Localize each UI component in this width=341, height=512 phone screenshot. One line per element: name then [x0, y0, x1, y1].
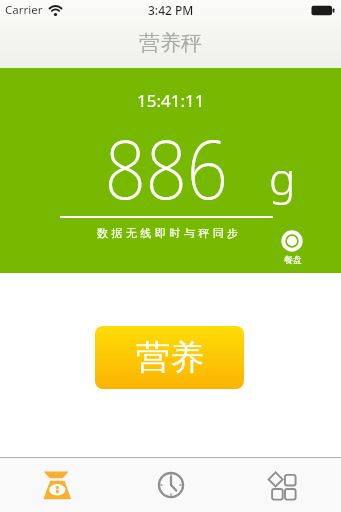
staticText: 数据无线即时与秤同步 — [95, 226, 240, 240]
button[interactable] — [114, 458, 228, 512]
button[interactable] — [0, 458, 114, 512]
button[interactable]: 营养 — [95, 326, 244, 389]
staticText: Carrier — [5, 2, 43, 18]
button[interactable]: 餐盘 — [274, 228, 312, 268]
staticText: 营养 — [136, 336, 204, 379]
staticText: g — [269, 148, 296, 200]
staticText: 3:42 PM — [148, 2, 194, 18]
staticText: 营养秤 — [139, 30, 202, 56]
staticText: 886 — [105, 112, 228, 188]
staticText: 15:41:11 — [137, 89, 205, 112]
button[interactable] — [227, 458, 341, 512]
staticText: 餐盘 — [284, 254, 302, 265]
